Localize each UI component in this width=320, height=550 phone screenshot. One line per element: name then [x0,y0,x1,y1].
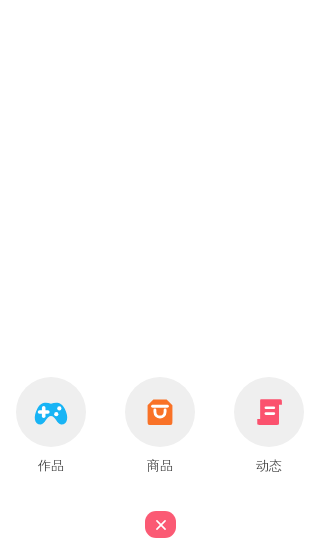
staticText: 商品 [147,457,173,473]
button[interactable]: 作品 [16,377,86,473]
button[interactable]: 关闭 [145,511,176,538]
button[interactable]: 动态 [234,377,304,473]
staticText: 作品 [38,457,64,473]
button[interactable]: 商品 [125,377,195,473]
staticText: 动态 [256,457,282,473]
